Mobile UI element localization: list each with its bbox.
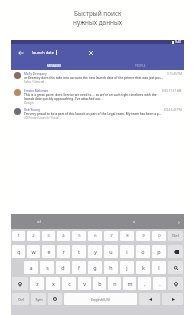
- staticText: n: [113, 280, 117, 287]
- button[interactable]: k: [136, 261, 150, 274]
- button[interactable]: 6: [88, 231, 102, 241]
- button[interactable]: x: [46, 277, 60, 290]
- staticText: .: [159, 280, 161, 287]
- staticText: 3D Printer Launch / Social: [24, 116, 59, 120]
- button[interactable]: Shift: [168, 277, 183, 290]
- staticText: Sym: [35, 297, 43, 302]
- staticText: w: [31, 248, 36, 255]
- staticText: 7: [110, 233, 113, 239]
- button[interactable]: 1: [12, 231, 25, 241]
- staticText: of: [37, 219, 41, 224]
- button[interactable]: z: [30, 277, 44, 290]
- button[interactable]: PEOPLE: [97, 61, 184, 70]
- staticText: o: [141, 248, 145, 255]
- staticText: I'm very proud to be a part of this laun…: [24, 112, 162, 116]
- button[interactable]: i: [120, 245, 134, 258]
- button[interactable]: ,: [138, 277, 151, 290]
- staticText: s: [46, 264, 49, 271]
- button[interactable]: 7: [104, 231, 118, 241]
- button[interactable]: f: [72, 261, 86, 274]
- staticText: a: [29, 264, 33, 271]
- staticText: b: [98, 280, 102, 287]
- staticText: нужных данных: [73, 18, 123, 27]
- staticText: g: [93, 264, 97, 271]
- staticText: z: [36, 280, 39, 287]
- button[interactable]: Ctrl: [12, 293, 29, 305]
- button[interactable]: English(US): [64, 293, 137, 305]
- button[interactable]: Shift: [12, 277, 28, 290]
- button[interactable]: q: [12, 245, 25, 258]
- button[interactable]: l: [152, 261, 166, 274]
- button[interactable]: j: [120, 261, 134, 274]
- button[interactable]: Right: [162, 293, 183, 305]
- button[interactable]: h: [104, 261, 118, 274]
- staticText: 5: [78, 233, 81, 239]
- other: Right: [170, 296, 176, 302]
- button[interactable]: y: [88, 245, 102, 258]
- staticText: q: [17, 248, 21, 255]
- button[interactable]: a: [24, 261, 38, 274]
- button[interactable]: d: [56, 261, 70, 274]
- button[interactable]: Back: [16, 48, 26, 58]
- staticText: PEOPLE: [135, 64, 146, 68]
- button[interactable]: Rob Young: [11, 106, 184, 123]
- button[interactable]: w: [27, 245, 40, 258]
- button[interactable]: t: [72, 245, 86, 258]
- staticText: 2: [32, 233, 35, 239]
- button[interactable]: u: [104, 245, 118, 258]
- button[interactable]: o: [136, 245, 150, 258]
- staticText: m: [127, 280, 133, 287]
- staticText: t: [78, 248, 80, 255]
- button[interactable]: s: [40, 261, 54, 274]
- button[interactable]: c: [62, 277, 76, 290]
- button[interactable]: Search: [168, 261, 183, 274]
- staticText: j: [126, 264, 128, 271]
- other: Shift: [17, 281, 23, 287]
- button[interactable]: Sym: [31, 293, 46, 305]
- button[interactable]: Emeka Makinwa: [11, 87, 184, 106]
- staticText: English(US): [91, 297, 110, 302]
- button[interactable]: Del: [168, 231, 183, 241]
- button[interactable]: r: [57, 245, 70, 258]
- button[interactable]: b: [93, 277, 106, 290]
- button[interactable]: Backspace: [168, 245, 183, 258]
- staticText: 8/25 11:37 AM: [162, 89, 182, 93]
- staticText: 8/24 4:43 PM: [164, 108, 182, 112]
- other: Emoji: [52, 296, 58, 302]
- button[interactable]: e: [42, 245, 55, 258]
- button[interactable]: m: [123, 277, 136, 290]
- staticText: Быстрый поиск: [74, 9, 122, 18]
- button[interactable]: Clear search: [85, 47, 96, 58]
- staticText: u: [109, 248, 113, 255]
- button[interactable]: Molly Dempsey: [11, 70, 184, 87]
- button[interactable]: 2: [27, 231, 40, 241]
- other: Backspace: [173, 249, 179, 255]
- button[interactable]: Emoji: [48, 293, 62, 305]
- button[interactable]: g: [88, 261, 102, 274]
- button[interactable]: .: [153, 277, 166, 290]
- staticText: p: [157, 248, 161, 255]
- button[interactable]: 4: [57, 231, 70, 241]
- staticText: r: [62, 248, 65, 255]
- button[interactable]: p: [152, 245, 166, 258]
- button[interactable]: 9: [136, 231, 150, 241]
- staticText: 0: [158, 233, 161, 239]
- staticText: k: [142, 264, 145, 271]
- staticText: This is a great point: does Service we n…: [24, 93, 160, 101]
- button[interactable]: MESSAGES: [11, 61, 97, 70]
- staticText: Emeka Makinwa: [24, 89, 49, 93]
- button[interactable]: 8: [120, 231, 134, 241]
- button[interactable]: 0: [152, 231, 166, 241]
- staticText: x: [52, 280, 55, 287]
- button[interactable]: 5: [72, 231, 86, 241]
- staticText: y: [94, 248, 97, 255]
- button[interactable]: Left: [139, 293, 160, 305]
- button[interactable]: 3: [42, 231, 55, 241]
- staticText: 8: [126, 233, 129, 239]
- button[interactable]: v: [78, 277, 91, 290]
- staticText: 1: [17, 233, 20, 239]
- staticText: MESSAGES: [47, 64, 62, 68]
- staticText: Rob Young: [24, 108, 40, 112]
- button[interactable]: n: [108, 277, 121, 290]
- staticText: v: [83, 280, 86, 287]
